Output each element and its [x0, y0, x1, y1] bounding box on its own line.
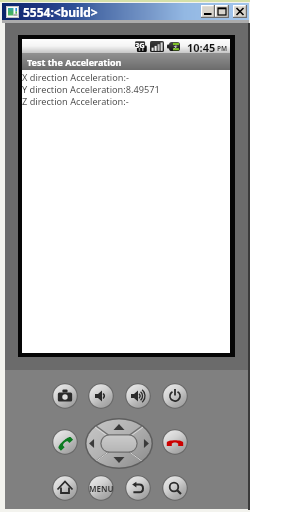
button[interactable]: Search [162, 475, 188, 501]
staticText: 3G [135, 40, 145, 50]
staticText: 5554:<build> [23, 4, 98, 20]
staticText: MENU [89, 483, 114, 494]
staticText: Z direction Acceleration:- [22, 95, 129, 107]
button[interactable]: Camera [52, 383, 78, 409]
button[interactable]: MENU [88, 475, 114, 501]
button[interactable]: Close [233, 5, 247, 18]
button[interactable]: Volume down [88, 383, 114, 409]
button[interactable]: Back [125, 475, 151, 501]
button[interactable]: End call [162, 429, 188, 455]
staticText: Y direction Acceleration:8.49571 [22, 83, 160, 95]
staticText: 10:45 [187, 40, 216, 54]
button[interactable]: Power [162, 383, 188, 409]
staticText: PM [217, 44, 228, 53]
staticText: Test the Acceleration [27, 56, 122, 68]
button[interactable]: Minimize [201, 5, 215, 18]
button[interactable]: Home [52, 475, 78, 501]
button[interactable]: Maximize [215, 5, 229, 18]
button[interactable]: Call [52, 429, 78, 455]
staticText: X direction Acceleration:- [22, 71, 129, 83]
button[interactable]: Volume up [125, 383, 151, 409]
